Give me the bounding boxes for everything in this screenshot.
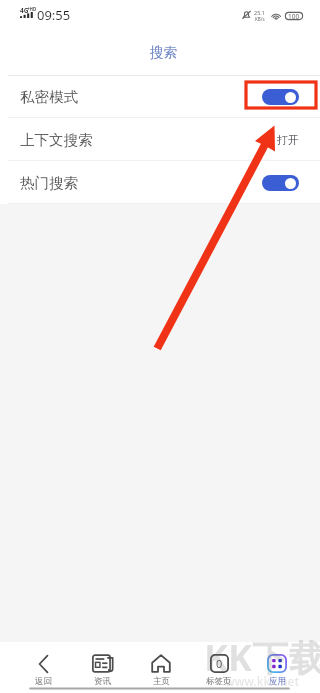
staticText: 搜索	[150, 44, 177, 61]
staticText: 热门搜索	[20, 174, 78, 192]
button[interactable]: Toggle 热门搜索	[262, 175, 299, 191]
staticText: 主页	[153, 676, 170, 687]
staticText: 25.1	[254, 9, 265, 16]
button[interactable]: 上下文搜索	[0, 118, 320, 161]
staticText: KB/s	[255, 16, 265, 22]
button[interactable]: 私密模式	[0, 75, 320, 118]
button[interactable]: Home	[132, 642, 190, 693]
staticText: 标签页	[206, 676, 232, 687]
staticText: 4G	[20, 6, 29, 15]
staticText: 09:55	[37, 6, 71, 24]
button[interactable]: Tabs	[190, 642, 248, 693]
staticText: 应用	[269, 676, 286, 687]
staticText: +HD	[27, 6, 37, 12]
button[interactable]: Apps	[248, 642, 306, 693]
staticText: 0	[216, 656, 223, 671]
staticText: KK下载	[204, 633, 320, 682]
staticText: 资讯	[94, 676, 111, 687]
staticText: 私密模式	[20, 88, 78, 106]
button[interactable]: News	[73, 642, 132, 693]
staticText: 上下文搜索	[20, 131, 93, 149]
button[interactable]: 热门搜索	[0, 161, 320, 204]
staticText: 打开	[277, 133, 299, 147]
button[interactable]: Back	[14, 642, 73, 693]
staticText: 返回	[35, 676, 52, 687]
staticText: 100	[288, 12, 300, 20]
button[interactable]: Toggle 私密模式	[262, 89, 299, 105]
staticText: www.kkx.net	[225, 673, 300, 689]
